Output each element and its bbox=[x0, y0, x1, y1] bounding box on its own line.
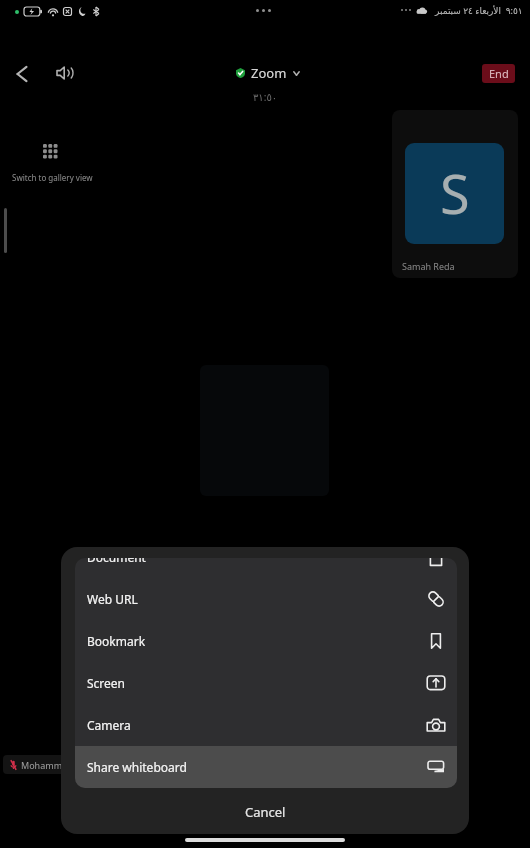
staticText: S bbox=[440, 156, 470, 230]
staticText: Camera bbox=[87, 717, 131, 733]
button[interactable]: Zoom bbox=[236, 64, 300, 82]
button[interactable]: Bookmark bbox=[75, 620, 457, 662]
button[interactable]: Web URL bbox=[75, 578, 457, 620]
staticText: Samah Reda bbox=[402, 260, 455, 272]
button[interactable]: Share whiteboard bbox=[75, 746, 457, 788]
staticText: ٣١:٥٠ bbox=[253, 90, 278, 104]
button[interactable]: Screen bbox=[75, 662, 457, 704]
staticText: End bbox=[489, 66, 509, 81]
staticText: Web URL bbox=[87, 591, 138, 607]
button[interactable]: Switch to gallery view bbox=[6, 136, 102, 188]
staticText: Share whiteboard bbox=[87, 759, 187, 775]
staticText: Mohamma bbox=[21, 759, 68, 771]
staticText: Zoom bbox=[251, 64, 287, 82]
staticText: Bookmark bbox=[87, 633, 146, 649]
button[interactable]: Cancel bbox=[61, 790, 469, 834]
staticText: Cancel bbox=[245, 803, 286, 821]
button[interactable]: End bbox=[482, 64, 515, 83]
staticText: Screen bbox=[87, 675, 126, 691]
button[interactable]: Speaker bbox=[45, 53, 85, 93]
staticText: Switch to gallery view bbox=[12, 172, 93, 183]
staticText: ٩:٥١ الأربعاء ٢٤ سبتمبر bbox=[435, 4, 523, 16]
button[interactable]: S bbox=[392, 110, 518, 278]
button[interactable]: Document bbox=[75, 558, 457, 578]
button[interactable]: Camera bbox=[75, 704, 457, 746]
staticText: Document bbox=[87, 558, 146, 565]
button[interactable]: Back bbox=[2, 54, 42, 94]
